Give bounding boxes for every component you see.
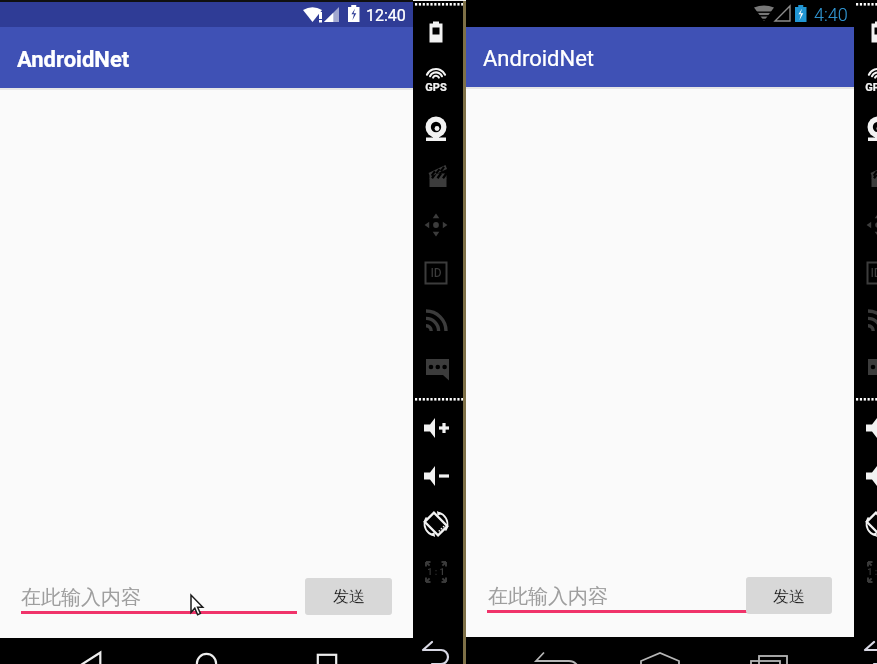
button[interactable]: Webcam (862, 112, 877, 144)
button[interactable]: Record screen (420, 160, 452, 192)
button[interactable]: 在此输入内容 (487, 582, 758, 613)
button[interactable]: Volume down (862, 460, 877, 492)
staticText: ID (430, 266, 442, 280)
button[interactable]: Webcam (420, 112, 452, 144)
button[interactable]: Volume up (862, 412, 877, 444)
button[interactable]: Device ID (420, 256, 452, 288)
button[interactable]: Rotate (862, 508, 877, 540)
staticText: AndroidNet (17, 47, 130, 73)
staticText: 12:40 (366, 6, 406, 25)
button[interactable]: GPS (420, 64, 452, 96)
button[interactable]: Back (862, 638, 877, 664)
button[interactable]: Zoom 1:1 (420, 556, 452, 588)
button[interactable]: AndroidNet (0, 27, 413, 88)
staticText: 发送 (333, 587, 365, 607)
button[interactable]: Record screen (862, 160, 877, 192)
staticText: GPS (865, 81, 877, 94)
staticText: 4:40 (814, 4, 848, 25)
button[interactable]: AndroidNet (466, 27, 854, 87)
button[interactable]: Battery (862, 16, 877, 48)
button[interactable]: Volume down (420, 460, 452, 492)
button[interactable]: Back (420, 638, 452, 664)
button[interactable]: Battery (420, 16, 452, 48)
staticText: 在此输入内容 (21, 585, 141, 610)
button[interactable]: D-pad (862, 208, 877, 240)
button[interactable]: Zoom 1:1 (862, 556, 877, 588)
staticText: 1 : 1 (867, 567, 877, 578)
button[interactable]: Device ID (862, 256, 877, 288)
button[interactable]: Cellular (420, 304, 452, 336)
staticText: ID (870, 266, 877, 280)
button[interactable]: D-pad (420, 208, 452, 240)
staticText: GPS (425, 81, 447, 94)
button[interactable]: GPS (862, 64, 877, 96)
button[interactable]: Rotate (420, 508, 452, 540)
button[interactable]: Cellular (862, 304, 877, 336)
staticText: 发送 (773, 587, 805, 607)
button[interactable]: Phone messages (420, 352, 452, 384)
button[interactable]: Volume up (420, 412, 452, 444)
staticText: 1 : 1 (427, 567, 445, 578)
staticText: 在此输入内容 (488, 584, 608, 609)
button[interactable]: 发送 (305, 578, 392, 615)
button[interactable]: 发送 (746, 577, 832, 614)
staticText: AndroidNet (483, 46, 595, 72)
button[interactable]: Phone messages (862, 352, 877, 384)
button[interactable]: 在此输入内容 (21, 583, 297, 614)
